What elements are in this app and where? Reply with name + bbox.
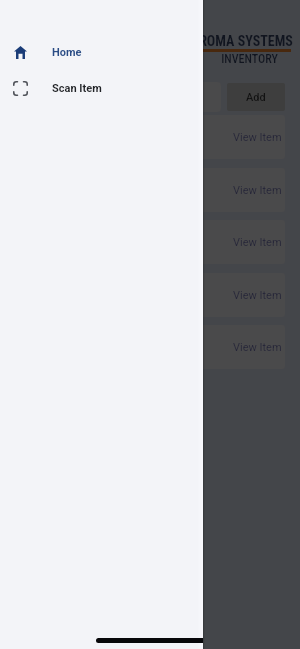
staticText: INVENTORY <box>221 52 278 66</box>
button[interactable]: View Item <box>229 231 285 254</box>
staticText: View Item <box>233 341 282 354</box>
button[interactable]: View Item <box>229 179 285 202</box>
staticText: View Item <box>233 289 282 302</box>
button[interactable] <box>110 82 221 112</box>
button[interactable]: Add <box>227 83 285 111</box>
staticText: ROMA SYSTEMS <box>199 33 293 49</box>
staticText: View Item <box>233 184 282 197</box>
staticText: Scan Item <box>52 82 102 95</box>
staticText: Home <box>52 46 82 59</box>
button[interactable]: View Item <box>229 126 285 149</box>
button[interactable]: Scan Item <box>0 77 203 100</box>
other: Scan Item <box>13 81 28 96</box>
button[interactable]: View Item <box>229 336 285 359</box>
staticText: View Item <box>233 131 282 144</box>
button[interactable]: View Item <box>229 284 285 307</box>
staticText: View Item <box>233 236 282 249</box>
staticText: Add <box>246 91 266 104</box>
button[interactable]: Home <box>0 41 203 64</box>
other: Home <box>14 46 27 59</box>
